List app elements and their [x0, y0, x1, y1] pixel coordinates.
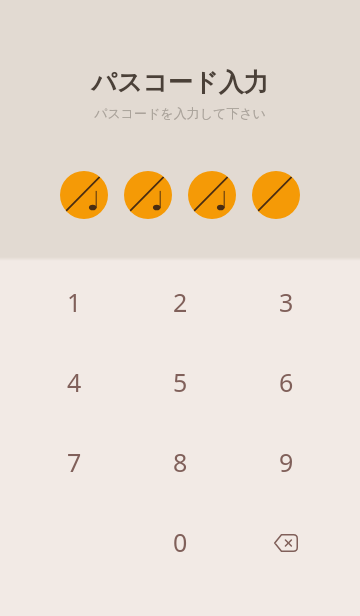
button[interactable]: 1 — [21, 262, 127, 342]
staticText: パスコード入力 — [91, 67, 269, 98]
button[interactable]: 5 — [127, 342, 233, 422]
staticText: 9 — [279, 445, 294, 479]
other: Delete — [274, 534, 298, 552]
staticText: パスコードを入力して下さい — [94, 105, 266, 121]
button[interactable]: 4 — [21, 342, 127, 422]
staticText: 7 — [67, 445, 82, 479]
staticText: 6 — [279, 365, 294, 399]
button[interactable]: 3 — [233, 262, 339, 342]
button[interactable]: Delete — [233, 502, 339, 582]
button[interactable]: 7 — [21, 422, 127, 502]
button[interactable]: 8 — [127, 422, 233, 502]
staticText: 2 — [173, 285, 188, 319]
button[interactable]: 9 — [233, 422, 339, 502]
staticText: 8 — [173, 445, 188, 479]
staticText: 4 — [67, 365, 82, 399]
button[interactable]: 2 — [127, 262, 233, 342]
button[interactable]: 0 — [127, 502, 233, 582]
staticText: 1 — [67, 285, 82, 319]
button[interactable]: 6 — [233, 342, 339, 422]
staticText: 0 — [173, 525, 188, 559]
staticText: 5 — [173, 365, 188, 399]
staticText: 3 — [279, 285, 294, 319]
